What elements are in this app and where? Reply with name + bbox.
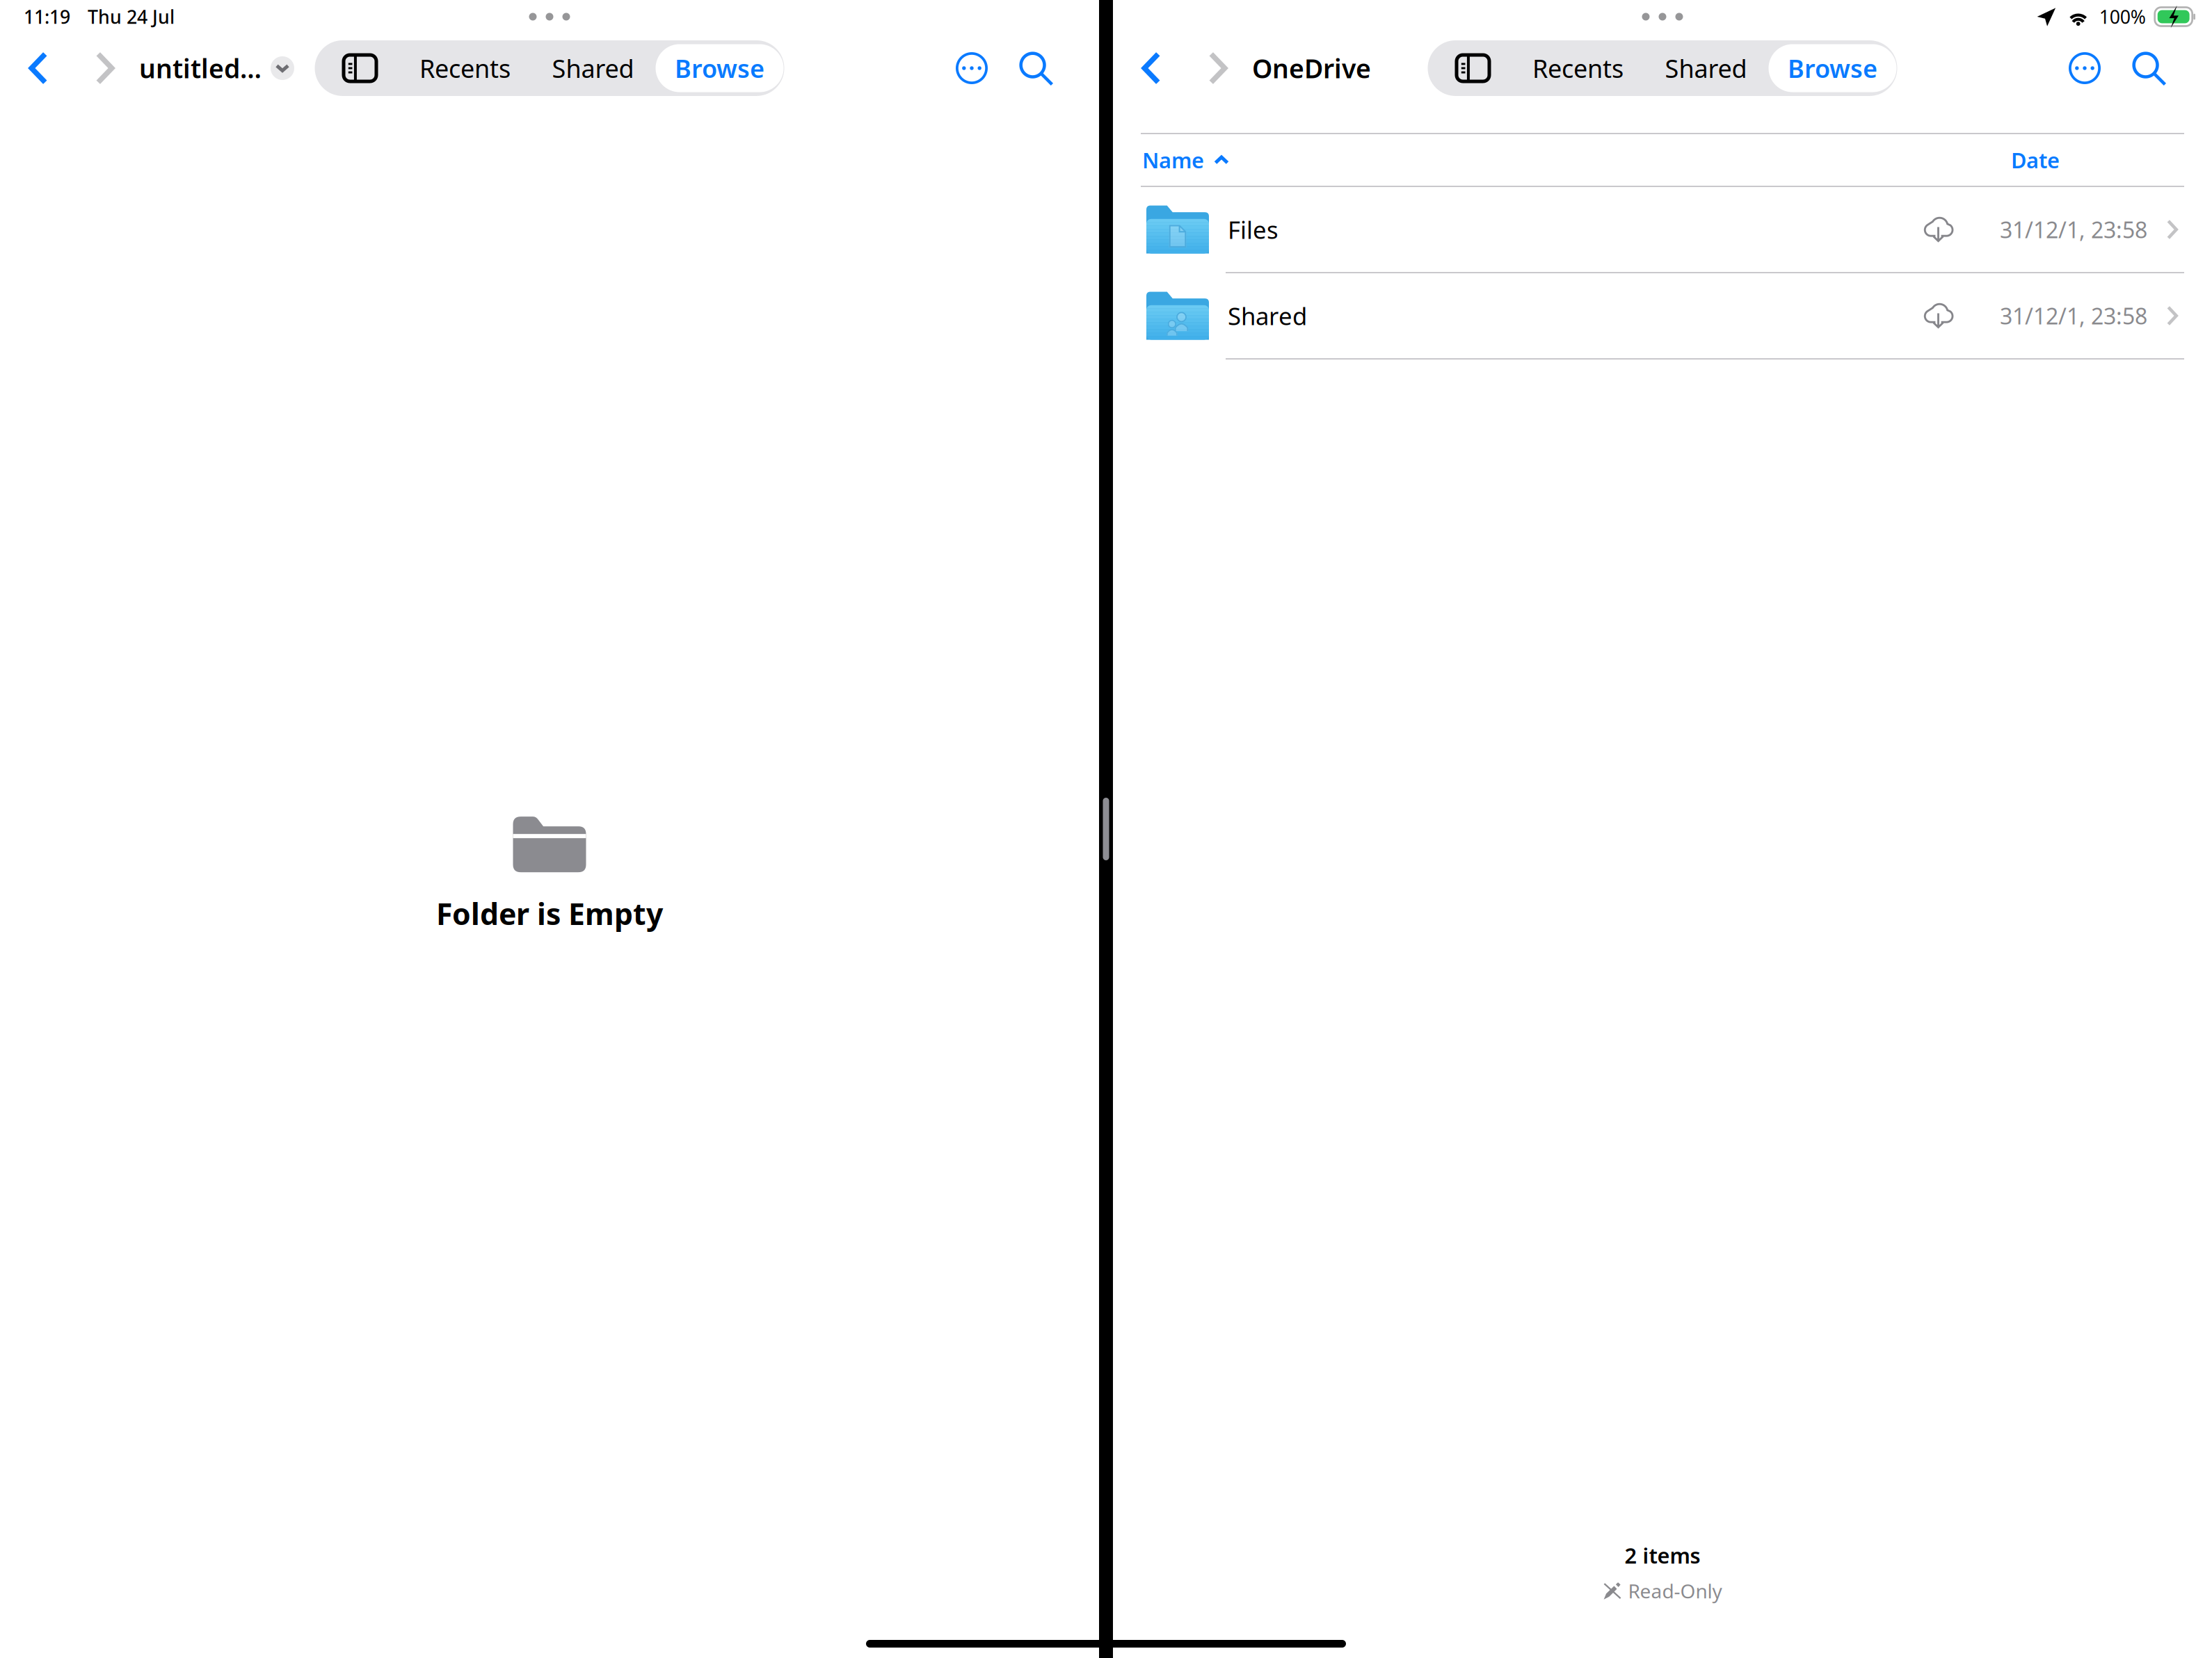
staticText: Shared [1228,300,1307,332]
staticText: Shared [552,52,634,85]
staticText: 31/12/1, 23:58 [2000,215,2147,244]
button[interactable]: Recents [1516,40,1640,96]
button[interactable]: Show Sidebar [1428,40,1518,96]
staticText: Date [2011,146,2060,174]
button[interactable]: Browse [1768,40,1897,96]
button[interactable]: Show Sidebar [315,40,405,96]
staticText: 100% [2099,4,2146,29]
staticText: 2 items [1625,1541,1700,1570]
staticText: OneDrive [1252,51,1371,85]
button[interactable]: More [2053,33,2117,103]
staticText: Thu 24 Jul [88,4,175,29]
button[interactable]: Forward [1190,33,1246,103]
staticText: Folder is Empty [436,894,663,933]
button[interactable]: Shared [1643,40,1769,96]
button[interactable]: Back [1123,33,1179,103]
button[interactable]: Search [1004,33,1068,103]
staticText: Browse [1788,52,1877,85]
staticText: Shared [1665,52,1747,85]
staticText: 31/12/1, 23:58 [2000,301,2147,331]
button[interactable]: Search [2117,33,2181,103]
button[interactable]: Forward [77,33,133,103]
staticText: Recents [419,52,511,85]
staticText: 11:19 [24,4,70,29]
button[interactable]: Recents [403,40,527,96]
button[interactable]: More [940,33,1004,103]
button[interactable]: Back [10,33,66,103]
staticText: Name [1142,146,1204,174]
staticText: Browse [675,52,764,85]
button[interactable]: Shared [1113,273,2212,358]
button[interactable]: Name [1142,134,1229,186]
staticText: Read-Only [1628,1578,1722,1604]
button[interactable]: Folder options [271,56,294,80]
staticText: untitled… [139,51,262,85]
button[interactable]: Browse [655,40,784,96]
button[interactable]: Date [2011,134,2060,186]
button[interactable]: Files [1113,187,2212,272]
staticText: Recents [1532,52,1624,85]
staticText: Files [1228,214,1279,246]
button[interactable]: Shared [530,40,656,96]
